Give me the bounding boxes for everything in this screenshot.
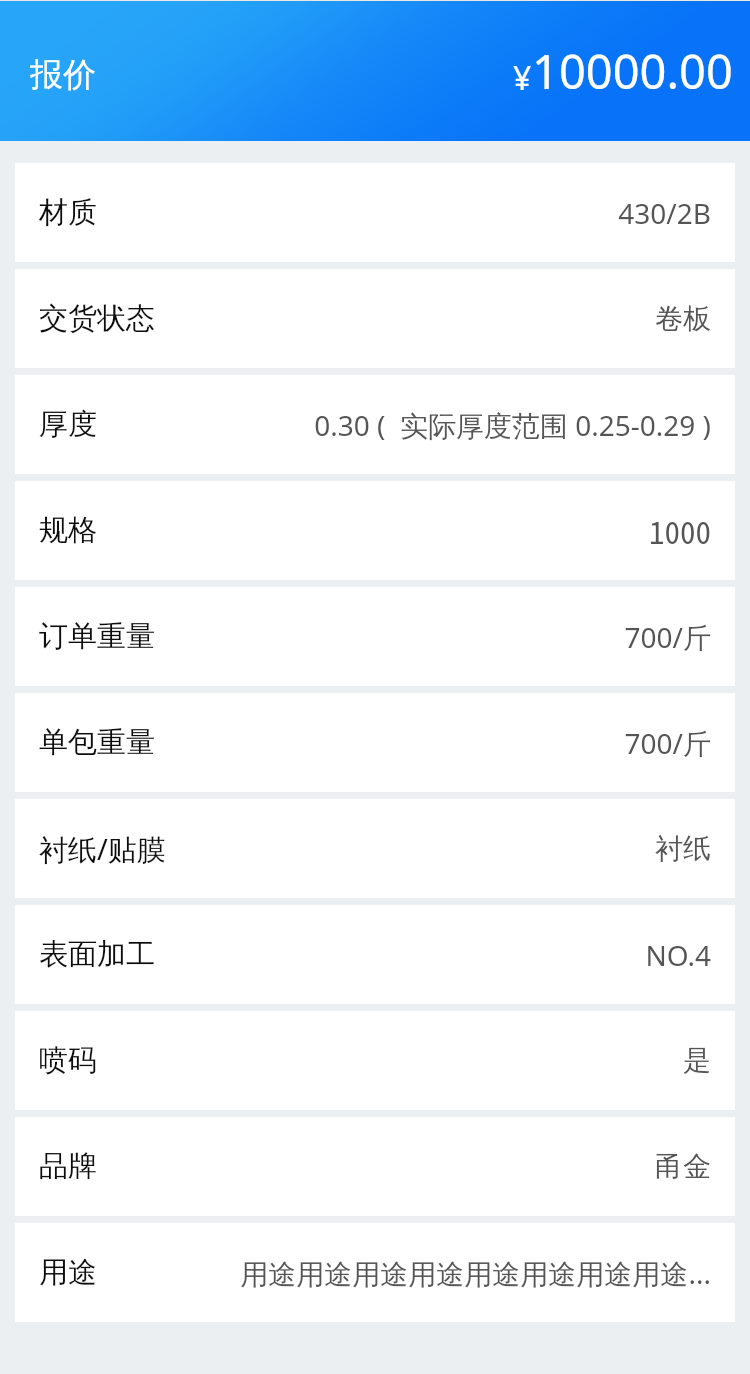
staticText: 700/斤 [167,724,711,762]
staticText: 报价 [30,54,96,96]
staticText: 材质 [39,194,97,231]
button[interactable]: 厚度 [15,375,735,474]
staticText: 1000 [109,508,711,553]
staticText: 0.30 ( 实际厚度范围 0.25-0.29 ) [109,406,711,444]
staticText: 卷板 [167,301,711,336]
staticText: NO.4 [167,936,711,974]
staticText: 10000.00 [532,39,733,103]
button[interactable]: 喷码 [15,1011,735,1110]
button[interactable]: 品牌 [15,1117,735,1216]
button[interactable]: 订单重量 [15,587,735,686]
staticText: 交货状态 [39,300,155,337]
staticText: 规格 [39,512,97,549]
staticText: 衬纸/贴膜 [39,829,166,869]
staticText: 430/2B [109,194,711,232]
button[interactable]: 用途 [15,1223,735,1322]
staticText: 甬金 [109,1149,711,1184]
button[interactable]: 规格 [15,481,735,580]
staticText: 表面加工 [39,936,155,973]
staticText: 衬纸 [178,831,711,866]
staticText: 单包重量 [39,724,155,761]
staticText: 用途 [39,1254,97,1291]
staticText: 用途用途用途用途用途用途用途用途... [109,1254,711,1292]
staticText: 厚度 [39,406,97,443]
staticText: 700/斤 [167,618,711,656]
staticText: 订单重量 [39,618,155,655]
staticText: 喷码 [39,1042,97,1079]
staticText: 品牌 [39,1148,97,1185]
button[interactable]: 单包重量 [15,693,735,792]
button[interactable]: 材质 [15,163,735,262]
button[interactable]: 表面加工 [15,905,735,1004]
button[interactable]: 衬纸/贴膜 [15,799,735,898]
staticText: ¥ [513,56,532,100]
staticText: 是 [109,1043,711,1078]
button[interactable]: 交货状态 [15,269,735,368]
